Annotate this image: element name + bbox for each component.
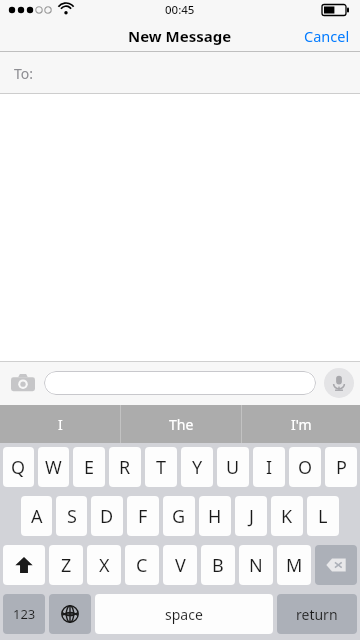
button[interactable]: D <box>91 496 123 536</box>
staticText: W <box>45 455 62 480</box>
staticText: P <box>336 455 347 480</box>
staticText: G <box>172 504 186 529</box>
staticText: T <box>156 455 167 480</box>
button[interactable]: To: <box>0 52 360 94</box>
button[interactable]: Change keyboard <box>49 594 91 634</box>
button[interactable]: L <box>307 496 339 536</box>
staticText: To: <box>14 64 34 83</box>
staticText: K <box>281 504 293 529</box>
staticText: The <box>169 415 194 434</box>
staticText: H <box>208 504 222 529</box>
staticText: E <box>84 455 95 480</box>
button[interactable]: Camera <box>6 366 40 400</box>
button[interactable]: T <box>145 447 177 487</box>
staticText: Cancel <box>304 26 350 46</box>
staticText: Y <box>192 455 203 480</box>
staticText: B <box>212 553 224 578</box>
button[interactable]: P <box>325 447 357 487</box>
staticText: X <box>99 553 110 578</box>
button[interactable]: 123 <box>3 594 45 634</box>
staticText: R <box>119 455 131 480</box>
button[interactable]: U <box>217 447 249 487</box>
button[interactable]: E <box>73 447 105 487</box>
button[interactable]: Cancel <box>294 20 360 52</box>
staticText: I <box>266 455 273 480</box>
button[interactable]: I <box>253 447 285 487</box>
button[interactable]: I <box>0 405 120 443</box>
staticText: N <box>249 553 263 578</box>
button[interactable]: N <box>239 545 273 585</box>
button[interactable]: J <box>235 496 267 536</box>
button[interactable]: A <box>21 496 52 536</box>
button[interactable]: C <box>125 545 159 585</box>
staticText: C <box>136 553 148 578</box>
button[interactable]: V <box>163 545 197 585</box>
button[interactable]: S <box>56 496 87 536</box>
staticText: New Message <box>128 26 232 46</box>
button[interactable]: Q <box>3 447 34 487</box>
staticText: L <box>318 504 328 529</box>
staticText: 00:45 <box>165 2 195 18</box>
button[interactable]: Y <box>181 447 213 487</box>
button[interactable]: M <box>277 545 311 585</box>
staticText: D <box>100 504 114 529</box>
staticText: return <box>296 605 338 624</box>
button[interactable]: G <box>163 496 195 536</box>
button[interactable] <box>44 371 316 395</box>
staticText: I'm <box>291 415 312 434</box>
button[interactable]: B <box>201 545 235 585</box>
button[interactable]: X <box>87 545 121 585</box>
button[interactable]: I'm <box>242 405 360 443</box>
staticText: Q <box>11 455 26 480</box>
button[interactable]: Shift <box>3 545 45 585</box>
staticText: V <box>175 553 186 578</box>
button[interactable]: F <box>127 496 159 536</box>
staticText: 123 <box>13 605 36 623</box>
staticText: Z <box>61 553 72 578</box>
button[interactable]: K <box>271 496 303 536</box>
button[interactable]: O <box>289 447 321 487</box>
staticText: O <box>298 455 313 480</box>
staticText: J <box>249 504 254 529</box>
button[interactable]: The <box>121 405 241 443</box>
button[interactable]: Z <box>49 545 83 585</box>
staticText: I <box>58 415 63 434</box>
staticText: S <box>67 504 77 529</box>
button[interactable]: Backspace <box>315 545 357 585</box>
staticText: F <box>138 504 148 529</box>
button[interactable]: R <box>109 447 141 487</box>
staticText: M <box>286 553 303 578</box>
button[interactable]: W <box>38 447 69 487</box>
staticText: space <box>165 605 203 624</box>
staticText: U <box>226 455 240 480</box>
button[interactable]: space <box>95 594 273 634</box>
button[interactable]: return <box>277 594 357 634</box>
staticText: A <box>31 504 43 529</box>
button[interactable]: Audio message <box>324 368 354 398</box>
button[interactable]: H <box>199 496 231 536</box>
